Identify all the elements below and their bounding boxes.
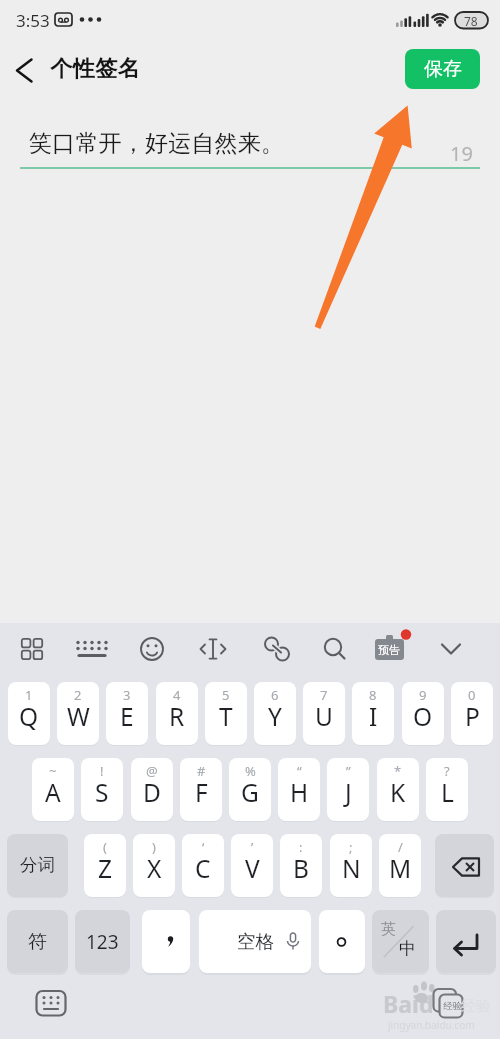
staticText: ” [346,762,351,780]
button[interactable] [435,834,494,897]
button[interactable] [311,625,374,673]
staticText: B [293,852,309,885]
staticText: 8 [369,686,377,704]
button[interactable]: 9 [402,682,444,745]
staticText: 19 [450,140,473,167]
staticText: 分词 [20,854,55,876]
button[interactable] [124,625,186,673]
button[interactable]: “ [278,758,320,821]
button[interactable] [248,625,311,673]
button[interactable]: / [379,834,421,897]
staticText: / [398,838,403,856]
button[interactable]: 符 [7,910,68,973]
staticText: jingyan.baidu.com [388,1018,475,1032]
button[interactable] [0,625,62,673]
button[interactable]: 5 [205,682,247,745]
staticText: V [245,852,260,885]
staticText: “ [297,762,302,780]
button[interactable]: ( [84,834,126,897]
button[interactable]: ‘ [182,834,224,897]
button[interactable]: 3 [106,682,148,745]
staticText: 9 [419,686,427,704]
button[interactable] [374,625,437,673]
staticText: P [465,700,480,733]
staticText: T [219,700,233,733]
staticText: X [147,852,162,885]
button[interactable] [186,625,248,673]
button[interactable]: 7 [303,682,345,745]
staticText: ~ [49,762,57,780]
staticText: 5 [222,686,230,704]
button[interactable]: 1 [8,682,50,745]
button[interactable]: ” [327,758,369,821]
staticText: W [67,700,90,733]
button[interactable]: ? [426,758,468,821]
button[interactable] [26,983,76,1025]
staticText: 3:53 [16,9,50,32]
staticText: 2 [74,686,82,704]
button[interactable]: # [180,758,222,821]
button[interactable]: * [377,758,419,821]
button[interactable]: ; [330,834,372,897]
staticText: 3 [123,686,131,704]
staticText: 78 [464,13,478,29]
staticText: M [389,852,412,885]
button[interactable] [436,910,496,973]
button[interactable]: : [280,834,322,897]
staticText: L [441,776,454,809]
staticText: @ [146,762,158,780]
staticText: 保存 [424,57,462,81]
staticText: 4 [173,686,181,704]
button[interactable]: ) [133,834,175,897]
staticText: ( [103,838,107,856]
button[interactable]: 2 [57,682,99,745]
button[interactable]: 6 [254,682,296,745]
staticText: E [120,700,134,733]
staticText: 1 [25,686,33,704]
button[interactable]: 4 [156,682,198,745]
staticText: O [413,700,433,733]
staticText: F [195,776,208,809]
staticText: 符 [28,930,47,954]
button[interactable] [62,625,124,673]
staticText: Z [98,852,113,885]
button[interactable]: % [229,758,271,821]
button[interactable] [319,910,365,973]
staticText: 中 [399,938,416,959]
staticText: K [390,776,406,809]
staticText: Y [268,700,282,733]
staticText: N [342,852,361,885]
staticText: ! [100,762,104,780]
staticText: # [197,762,206,780]
button[interactable] [142,910,190,973]
button[interactable]: 123 [75,910,130,973]
staticText: 个性签名 [50,55,140,83]
staticText: I [369,700,378,733]
button[interactable]: 保存 [405,49,480,89]
staticText: D [143,776,161,809]
button[interactable]: 英 [372,910,429,973]
button[interactable]: 分词 [7,834,68,897]
staticText: G [241,776,259,809]
staticText: ; [349,838,353,856]
staticText: 预告 [378,643,400,657]
staticText: 7 [320,686,328,704]
button[interactable]: 8 [352,682,394,745]
staticText: A [45,776,61,809]
button[interactable]: @ [131,758,173,821]
staticText: 123 [86,929,119,955]
button[interactable]: ~ [32,758,74,821]
staticText: H [290,776,309,809]
staticText: % [245,762,256,780]
staticText: 0 [468,686,476,704]
button[interactable]: 空格 [199,910,311,973]
staticText: R [169,700,185,733]
staticText: 英 [381,920,396,939]
button[interactable]: 0 [451,682,493,745]
button[interactable]: ! [81,758,123,821]
button[interactable]: ’ [231,834,273,897]
button[interactable] [437,625,500,673]
staticText: J [345,776,352,809]
staticText: 空格 [237,930,274,953]
button[interactable] [8,52,44,88]
